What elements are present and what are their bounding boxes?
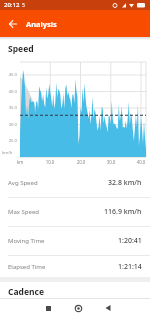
staticText: 30.0 xyxy=(2,122,17,128)
button[interactable] xyxy=(100,300,116,316)
button[interactable]: Elapsed Time xyxy=(0,256,150,277)
staticText: 20.0 xyxy=(73,159,89,165)
staticText: 116.9 km/h xyxy=(104,207,142,217)
button[interactable]: Avg Speed xyxy=(0,169,150,197)
staticText: Moving Time xyxy=(8,237,45,245)
staticText: 1:20:41 xyxy=(118,236,142,246)
staticText: Max Speed xyxy=(8,208,39,216)
staticText: 35.0 xyxy=(2,105,17,111)
staticText: km/h xyxy=(2,150,13,156)
staticText: 45.0 xyxy=(2,72,17,78)
staticText: Avg Speed xyxy=(8,179,38,187)
staticText: 25.0 xyxy=(2,138,17,144)
button[interactable]: Max Speed xyxy=(0,198,150,226)
staticText: 30.0 xyxy=(103,159,119,165)
staticText: km xyxy=(17,159,24,165)
staticText: Cadence xyxy=(8,286,44,298)
staticText: Elapsed Time xyxy=(8,263,46,271)
staticText: 10.0 xyxy=(42,159,58,165)
staticText: 40.0 xyxy=(2,89,17,95)
staticText: 20:12 xyxy=(4,1,20,9)
button[interactable]: Moving Time xyxy=(0,227,150,255)
staticText: 32.8 km/h xyxy=(108,178,142,188)
staticText: 5 xyxy=(22,2,25,9)
button[interactable] xyxy=(40,300,56,316)
staticText: Speed xyxy=(8,43,34,55)
staticText: 1:21:14 xyxy=(118,262,142,272)
staticText: 40.0 xyxy=(133,159,149,165)
staticText: Analysis xyxy=(26,19,57,29)
button[interactable] xyxy=(70,300,86,316)
button[interactable] xyxy=(0,11,26,37)
